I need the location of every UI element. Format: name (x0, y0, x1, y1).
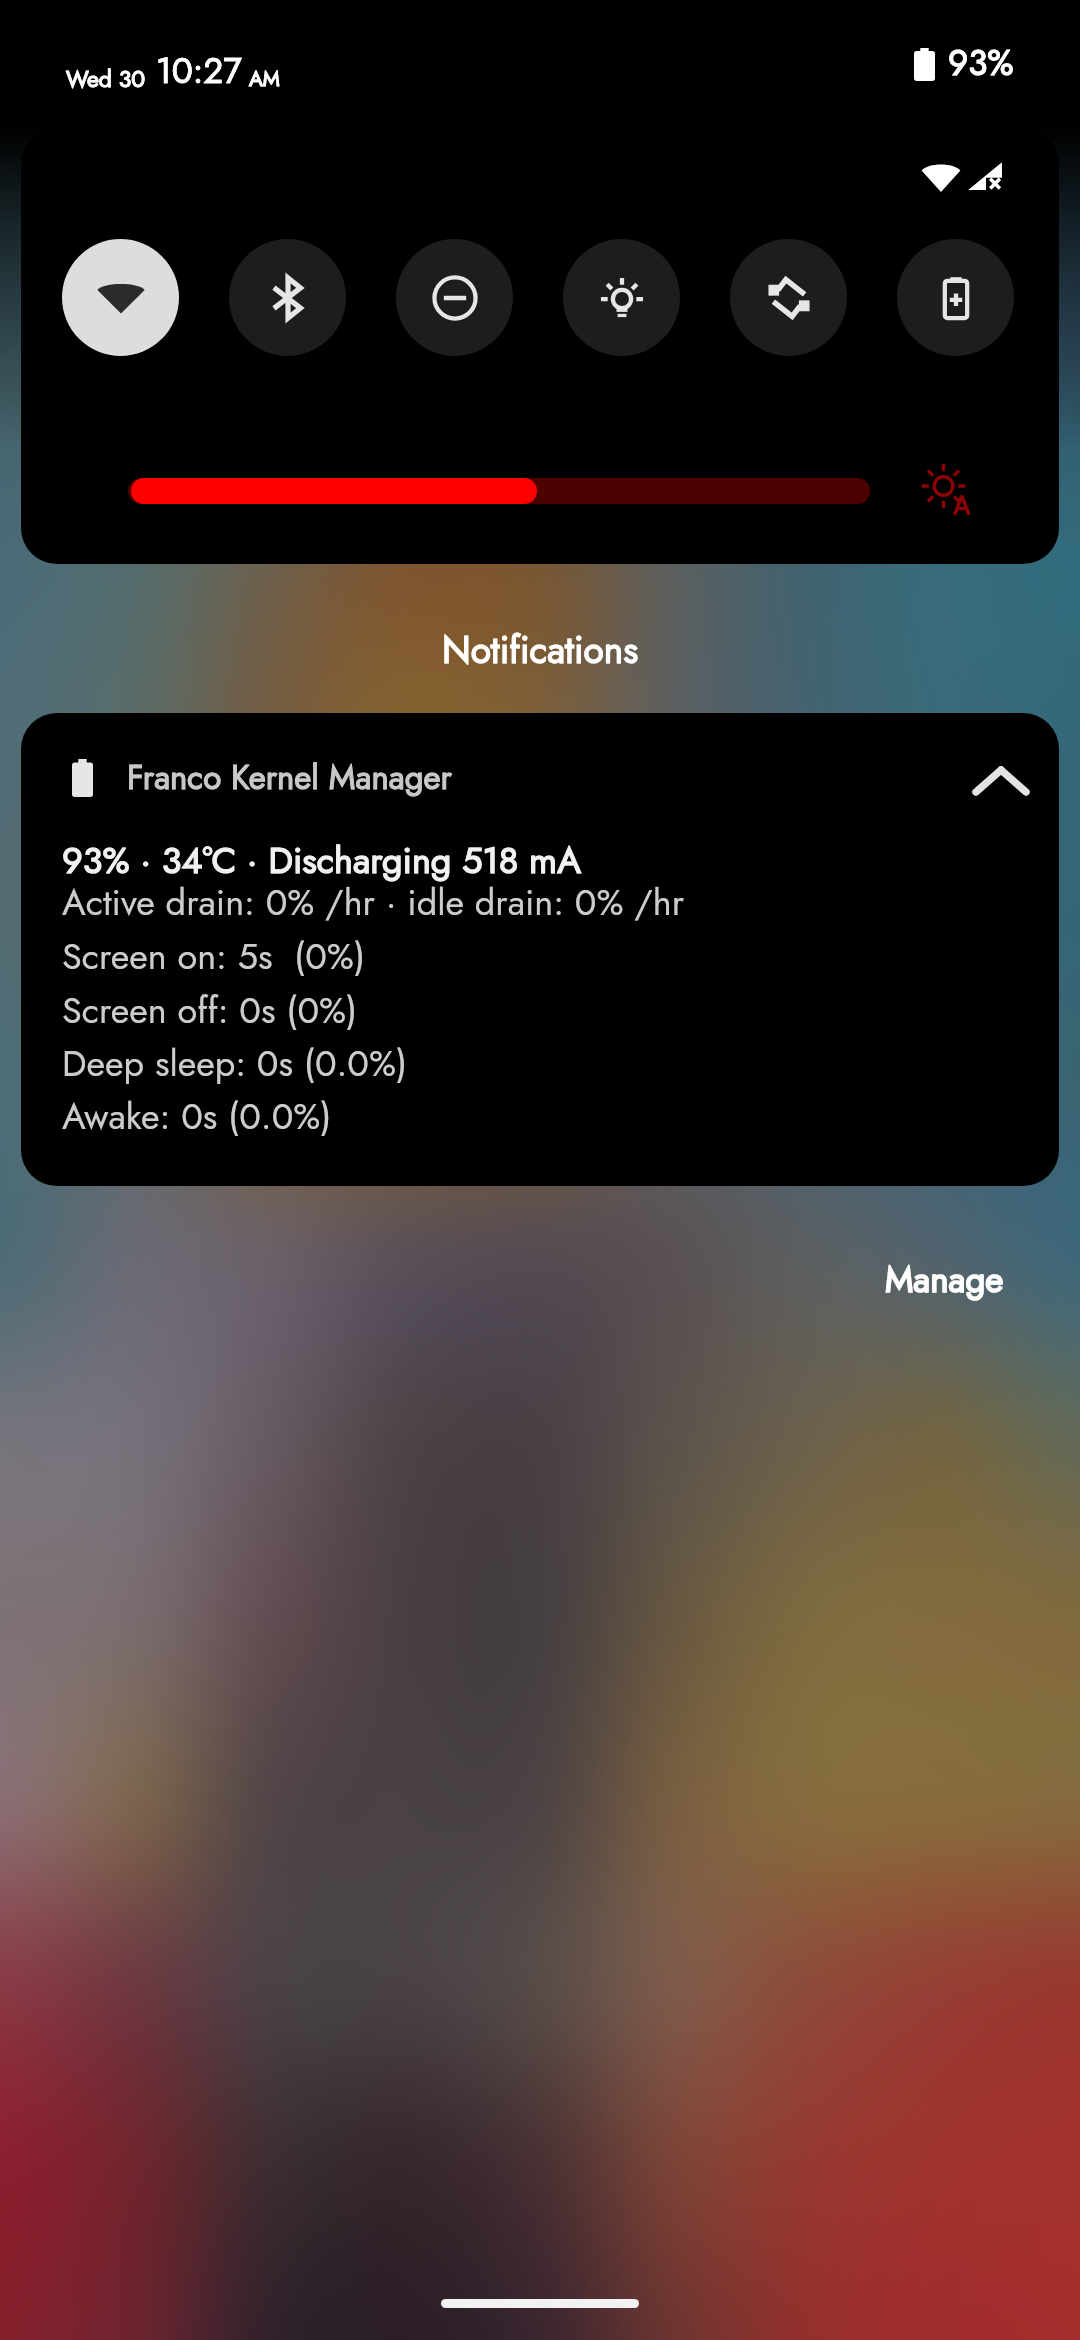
button[interactable]: Collapse notification (972, 763, 1030, 799)
button[interactable]: Bluetooth (229, 239, 346, 356)
staticText: 10:27 (156, 46, 242, 97)
staticText: Notifications (0, 623, 1080, 676)
staticText: AM (249, 64, 280, 94)
staticText: Screen on: 5s (0%) (62, 930, 366, 982)
staticText: 10:27 (156, 46, 242, 97)
staticText: Manage (885, 1255, 1004, 1306)
staticText: Franco Kernel Manager (127, 754, 452, 802)
button[interactable]: Internet (62, 239, 179, 356)
staticText: Awake: 0s (0.0%) (62, 1090, 332, 1142)
button[interactable]: Do Not Disturb (396, 239, 513, 356)
staticText: Wed 30 (66, 62, 146, 95)
staticText: 93% · 34°C · Discharging 518 mA (62, 834, 581, 886)
button[interactable]: Auto brightness (918, 462, 978, 522)
other: No SIM (965, 157, 1007, 195)
button[interactable]: Flashlight (563, 239, 680, 356)
staticText: 93% · 34°C · Discharging 518 mA (62, 834, 581, 886)
staticText: Active drain: 0% /hr · idle drain: 0% /h… (62, 876, 685, 928)
button[interactable]: Brightness (128, 478, 870, 504)
button[interactable]: Auto-rotate (730, 239, 847, 356)
staticText: Franco Kernel Manager (127, 754, 452, 802)
button[interactable]: Franco Kernel Manager (21, 713, 1059, 1186)
button[interactable]: Battery Saver (897, 239, 1014, 356)
staticText: Manage (885, 1255, 1004, 1306)
staticText: Wed 30 (66, 62, 146, 95)
staticText: Screen off: 0s (0%) (62, 984, 358, 1036)
staticText: 93% (948, 38, 1014, 89)
staticText: Deep sleep: 0s (0.0%) (62, 1037, 408, 1089)
staticText: Notifications (0, 623, 1080, 676)
staticText: AM (249, 64, 280, 94)
staticText: 93% (948, 38, 1014, 89)
other: Wi-Fi signal (921, 159, 961, 193)
button[interactable]: Manage (861, 1243, 1028, 1318)
